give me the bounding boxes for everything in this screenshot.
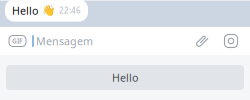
button[interactable]: Camera (220, 30, 242, 52)
staticText: Mensagem (36, 34, 93, 48)
staticText: Hello (12, 3, 38, 18)
staticText: GIF (12, 37, 23, 45)
button[interactable]: GIF (9, 35, 26, 46)
button[interactable]: Hello (6, 65, 244, 90)
staticText: 👋 (42, 4, 55, 17)
staticText: 22:46 (59, 5, 81, 16)
staticText: Hello (112, 70, 138, 85)
button[interactable]: Attach file (191, 30, 213, 52)
